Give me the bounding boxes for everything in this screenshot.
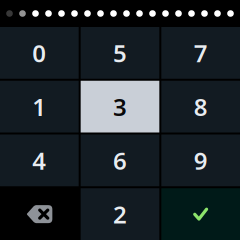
staticText: 1 xyxy=(32,91,46,123)
button[interactable]: 8 xyxy=(161,81,240,133)
button[interactable]: 9 xyxy=(161,134,240,186)
staticText: 3 xyxy=(113,91,127,123)
staticText: 0 xyxy=(32,37,46,69)
staticText: 7 xyxy=(194,37,208,69)
staticText: 8 xyxy=(194,91,208,123)
button[interactable]: 5 xyxy=(81,27,159,79)
button[interactable]: 4 xyxy=(0,134,79,186)
button[interactable]: 0 xyxy=(0,27,79,79)
staticText: 6 xyxy=(113,144,127,176)
button[interactable]: Delete xyxy=(0,188,79,240)
staticText: 5 xyxy=(113,37,127,69)
button[interactable]: 2 xyxy=(81,188,159,240)
staticText: 9 xyxy=(194,144,208,176)
staticText: 2 xyxy=(113,198,127,230)
button[interactable]: 3 xyxy=(81,81,159,133)
button[interactable]: 7 xyxy=(161,27,240,79)
button[interactable]: 1 xyxy=(0,81,79,133)
button[interactable]: Confirm xyxy=(161,188,240,240)
staticText: 4 xyxy=(32,144,46,176)
button[interactable]: 6 xyxy=(81,134,159,186)
